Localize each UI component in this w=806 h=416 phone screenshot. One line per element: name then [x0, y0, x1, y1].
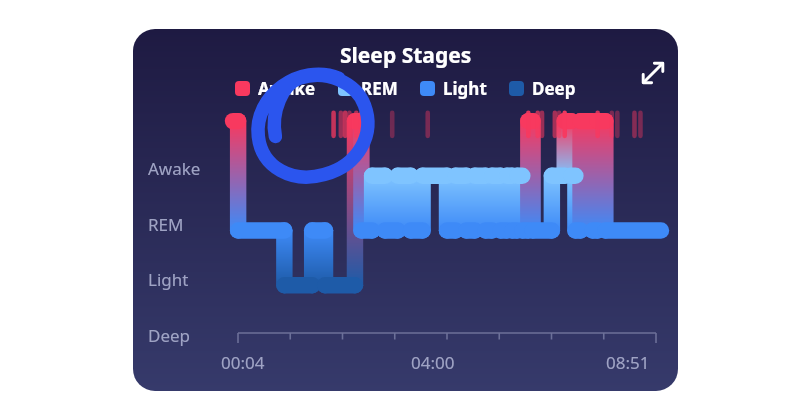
staticText: Deep: [532, 77, 576, 100]
staticText: 08:51: [606, 351, 650, 374]
button[interactable]: Expand chart: [631, 51, 675, 95]
staticText: Light: [443, 77, 487, 100]
staticText: REM: [361, 77, 398, 100]
staticText: Deep: [148, 324, 191, 347]
button[interactable]: REM: [338, 77, 398, 100]
staticText: Awake: [148, 157, 201, 180]
staticText: REM: [148, 213, 184, 236]
staticText: Sleep Stages: [340, 41, 472, 70]
button[interactable]: Awake: [235, 77, 316, 100]
button[interactable]: Deep: [509, 77, 576, 100]
button[interactable]: Light: [420, 77, 487, 100]
staticText: 00:04: [221, 351, 265, 374]
staticText: Awake: [258, 77, 316, 100]
staticText: 04:00: [411, 351, 455, 374]
staticText: Light: [148, 268, 189, 291]
